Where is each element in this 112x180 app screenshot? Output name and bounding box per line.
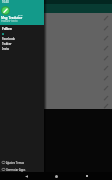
button[interactable]: Twitter bbox=[0, 41, 44, 46]
staticText: Facebook bbox=[2, 37, 15, 41]
button[interactable]: Gerenciar Apps bbox=[2, 166, 44, 173]
staticText: Insta bbox=[2, 47, 9, 51]
button[interactable]: Ajustes Temas bbox=[2, 159, 44, 166]
button[interactable]: Insta bbox=[0, 46, 44, 51]
button[interactable]: Back bbox=[21, 172, 31, 180]
button[interactable]: Recents bbox=[82, 172, 92, 180]
staticText: 10:30 bbox=[2, 0, 9, 4]
button[interactable] bbox=[0, 73, 112, 83]
button[interactable] bbox=[0, 23, 112, 33]
button[interactable] bbox=[0, 103, 112, 109]
button[interactable] bbox=[0, 43, 112, 53]
button[interactable] bbox=[0, 13, 112, 23]
button[interactable] bbox=[0, 93, 112, 103]
staticText: v1.0 bbox=[18, 14, 23, 17]
staticText: Ajustes Temas bbox=[6, 161, 24, 165]
button[interactable]: Facebook bbox=[0, 36, 44, 41]
button[interactable] bbox=[0, 53, 112, 63]
staticText: Msg Tradutor bbox=[1, 16, 23, 20]
button[interactable]: Home bbox=[51, 172, 61, 180]
staticText: Gerenciar Apps bbox=[6, 168, 26, 172]
button[interactable] bbox=[0, 83, 112, 93]
button[interactable] bbox=[0, 63, 112, 73]
button[interactable] bbox=[0, 33, 112, 43]
staticText: Follow bbox=[2, 27, 12, 31]
staticText: traduzir texto bbox=[1, 19, 18, 23]
staticText: Twitter bbox=[2, 42, 12, 46]
